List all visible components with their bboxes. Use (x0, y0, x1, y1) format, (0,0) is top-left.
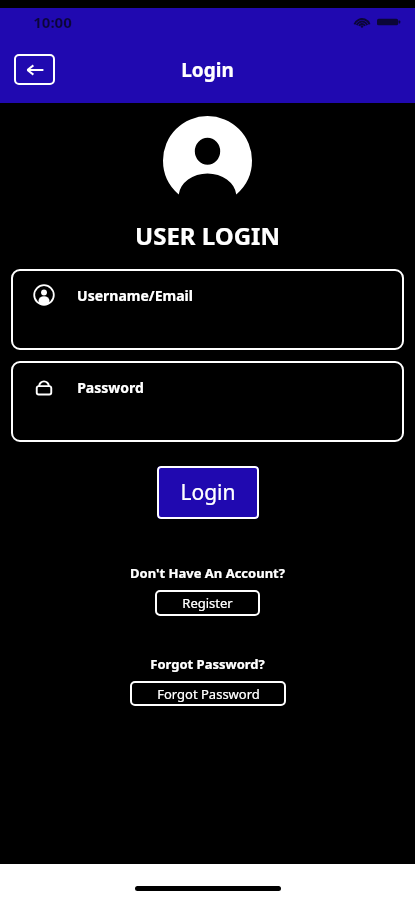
staticText: Password (77, 378, 144, 397)
button[interactable]: Register (155, 590, 260, 616)
staticText: Forgot Password? (150, 655, 265, 673)
staticText: Username/Email (77, 286, 193, 305)
button[interactable]: Password (11, 361, 404, 442)
button[interactable]: Forgot Password (130, 681, 286, 706)
staticText: Register (182, 594, 233, 612)
button[interactable]: Back (14, 54, 55, 85)
staticText: Login (180, 478, 236, 507)
button[interactable]: Login (157, 466, 259, 519)
staticText: Login (181, 57, 234, 83)
staticText: Forgot Password (157, 685, 260, 703)
staticText: USER LOGIN (135, 219, 280, 252)
staticText: Don't Have An Account? (130, 564, 285, 582)
staticText: 10:00 (33, 12, 72, 32)
button[interactable]: Username/Email (11, 269, 404, 350)
